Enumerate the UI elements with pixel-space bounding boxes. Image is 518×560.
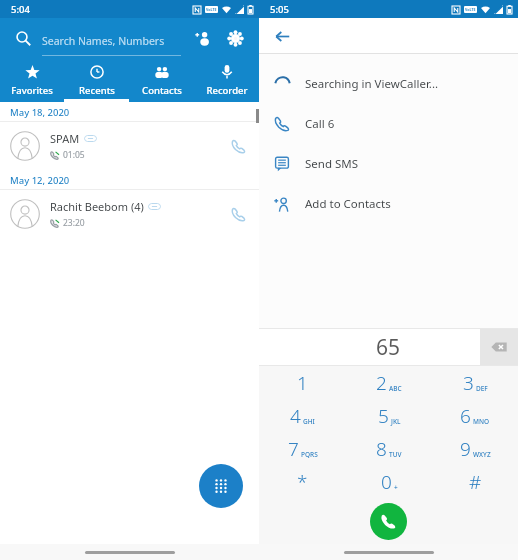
staticText: * <box>297 469 308 495</box>
staticText: 5 <box>378 403 389 429</box>
staticText: PQRS <box>301 450 318 459</box>
staticText: VoLTE <box>465 7 476 12</box>
button[interactable]: Call <box>370 503 407 540</box>
staticText: 6 <box>460 403 471 429</box>
button[interactable]: 9 <box>432 432 518 465</box>
staticText: 2 <box>376 370 387 396</box>
button[interactable]: Back <box>269 23 295 49</box>
button[interactable]: 4 <box>259 399 346 432</box>
staticText: 23:20 <box>63 217 85 229</box>
staticText: May 18, 2020 <box>10 106 70 119</box>
button[interactable]: Open dialpad <box>199 464 243 508</box>
staticText: Recents <box>79 84 115 97</box>
button[interactable]: Searching in ViewCaller... <box>259 64 518 104</box>
staticText: VoLTE <box>206 7 217 12</box>
button[interactable]: 5 <box>346 399 432 432</box>
button[interactable]: # <box>432 465 518 498</box>
button[interactable]: 2 <box>346 366 432 399</box>
staticText: Contacts <box>142 84 182 97</box>
staticText: Add to Contacts <box>305 196 391 212</box>
button[interactable]: Call Rachit Beebom (4) <box>221 197 255 231</box>
staticText: 01:05 <box>63 149 85 161</box>
staticText: Favorites <box>11 84 53 97</box>
staticText: 8 <box>376 436 387 462</box>
button[interactable]: Contacts <box>129 58 194 102</box>
staticText: 4 <box>290 403 301 429</box>
staticText: 65 <box>376 333 401 362</box>
staticText: Search Names, Numbers <box>42 34 165 48</box>
staticText: TUV <box>389 450 402 459</box>
button[interactable]: SPAM <box>0 122 259 170</box>
staticText: JKL <box>391 417 401 426</box>
button[interactable]: Call SPAM <box>221 129 255 163</box>
button[interactable]: Settings <box>223 26 247 50</box>
button[interactable]: * <box>259 465 346 498</box>
button[interactable]: 0 <box>346 465 432 498</box>
staticText: # <box>469 469 482 495</box>
staticText: DEF <box>476 384 488 393</box>
button[interactable]: 6 <box>432 399 518 432</box>
staticText: Send SMS <box>305 156 359 172</box>
staticText: + <box>394 483 398 492</box>
button[interactable]: 1 <box>259 366 346 399</box>
staticText: 7 <box>288 436 299 462</box>
button[interactable]: Add to Contacts <box>259 184 518 224</box>
staticText: Searching in ViewCaller... <box>305 76 439 92</box>
staticText: 9 <box>460 436 471 462</box>
staticText: 0 <box>381 469 392 495</box>
staticText: 3 <box>463 370 474 396</box>
staticText: Rachit Beebom (4) <box>50 199 144 214</box>
staticText: Call 6 <box>305 116 335 132</box>
button[interactable]: Add contact <box>191 26 215 50</box>
staticText: 1 <box>297 370 308 396</box>
button[interactable]: Call 6 <box>259 104 518 144</box>
staticText: 5:04 <box>11 3 30 16</box>
staticText: WXYZ <box>473 450 491 459</box>
button[interactable]: 7 <box>259 432 346 465</box>
button[interactable]: Rachit Beebom (4) <box>0 190 259 238</box>
staticText: May 12, 2020 <box>10 174 70 187</box>
button[interactable]: Search Names, Numbers <box>42 18 181 58</box>
staticText: 5:05 <box>270 3 289 16</box>
button[interactable]: Search <box>12 27 34 49</box>
button[interactable]: Recents <box>64 58 129 102</box>
staticText: ABC <box>389 384 402 393</box>
button[interactable]: Favorites <box>0 58 64 102</box>
staticText: GHI <box>303 417 315 426</box>
button[interactable]: 3 <box>432 366 518 399</box>
button[interactable]: Send SMS <box>259 144 518 184</box>
staticText: MNO <box>473 417 490 426</box>
staticText: Recorder <box>206 84 248 97</box>
button[interactable]: Recorder <box>194 58 259 102</box>
button[interactable]: 8 <box>346 432 432 465</box>
button[interactable]: Backspace <box>480 329 518 365</box>
staticText: SPAM <box>50 131 80 146</box>
